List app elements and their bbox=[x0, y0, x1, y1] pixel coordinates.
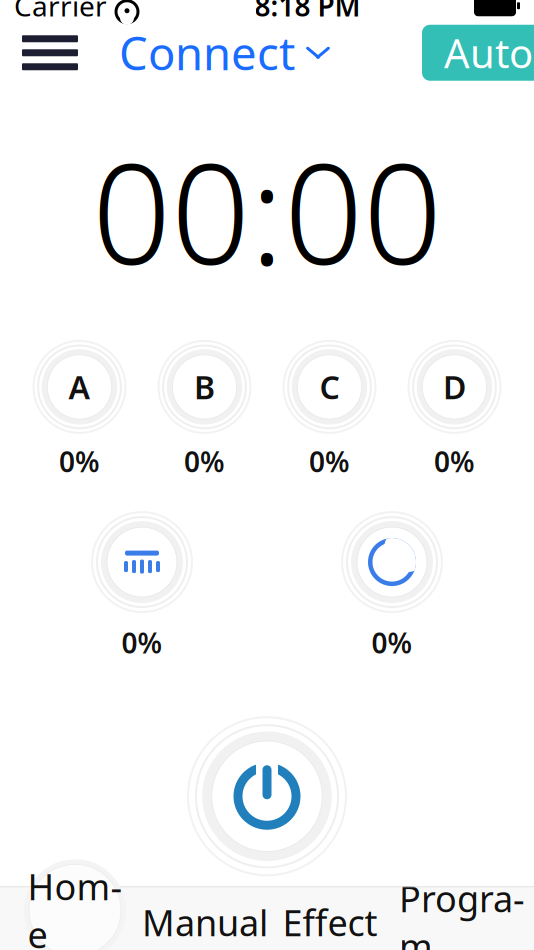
button[interactable]: Night mode bbox=[342, 512, 442, 612]
button[interactable]: Home bbox=[24, 859, 126, 950]
staticText: 0% bbox=[434, 443, 475, 480]
button[interactable]: Manual bbox=[140, 886, 270, 950]
staticText: C bbox=[319, 366, 339, 408]
button[interactable]: Program bbox=[390, 886, 534, 950]
staticText: 0% bbox=[371, 624, 412, 661]
button[interactable]: C bbox=[283, 341, 375, 433]
staticText: Manual bbox=[142, 898, 268, 946]
staticText: 0% bbox=[309, 443, 350, 480]
button[interactable]: A bbox=[33, 341, 125, 433]
button[interactable]: B bbox=[158, 341, 250, 433]
staticText: D bbox=[443, 366, 466, 408]
staticText: B bbox=[194, 366, 215, 408]
staticText: Program bbox=[399, 874, 525, 950]
button[interactable]: Auto bbox=[422, 25, 534, 81]
staticText: 0% bbox=[184, 443, 225, 480]
staticText: Auto bbox=[444, 26, 533, 79]
button[interactable]: D bbox=[408, 341, 500, 433]
staticText: 0% bbox=[121, 624, 162, 661]
button[interactable]: Effect bbox=[270, 886, 390, 950]
staticText: Effect bbox=[282, 898, 377, 946]
staticText: 0% bbox=[59, 443, 100, 480]
staticText: A bbox=[68, 366, 90, 408]
button[interactable]: Menu bbox=[12, 24, 88, 82]
staticText: Connect bbox=[119, 23, 295, 83]
button[interactable]: Light bbox=[92, 512, 192, 612]
button[interactable]: Power bbox=[188, 717, 346, 875]
staticText: Carrier bbox=[14, 0, 107, 24]
staticText: Home bbox=[27, 862, 122, 950]
staticText: 8:18 PM bbox=[254, 0, 360, 24]
button[interactable]: Connect bbox=[113, 24, 337, 82]
staticText: 00:00 bbox=[92, 119, 442, 303]
